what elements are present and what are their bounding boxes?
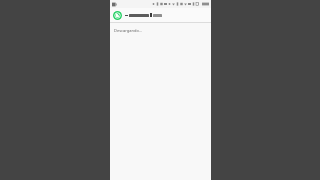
staticText: Descargando... [114,28,143,33]
button[interactable]: WhatsApp [110,8,211,22]
other: WhatsApp [113,11,122,20]
